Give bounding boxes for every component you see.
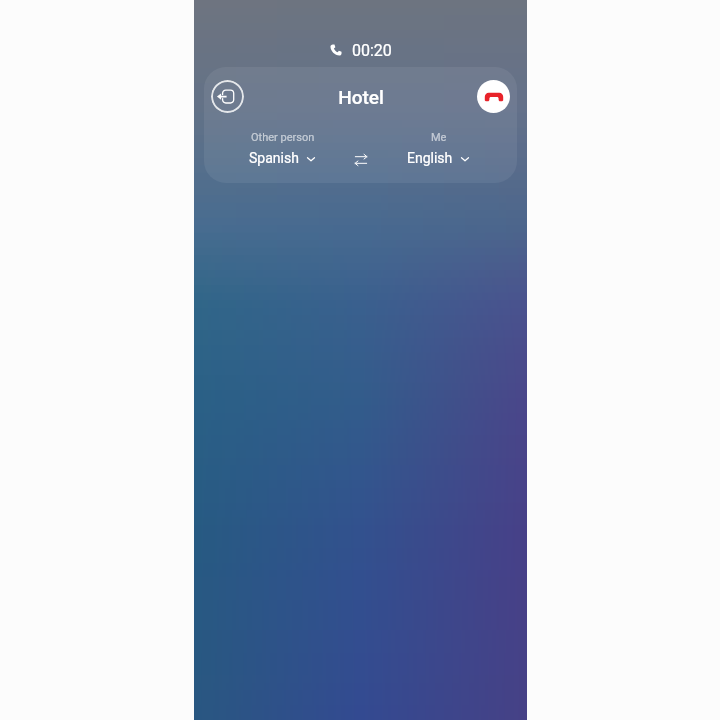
staticText: Other person [251, 131, 315, 144]
staticText: Me [431, 131, 447, 144]
button[interactable]: Exit translation [211, 80, 244, 113]
staticText: Hotel [338, 86, 384, 108]
button[interactable]: Swap languages [343, 142, 379, 178]
staticText: 00:20 [352, 41, 392, 60]
button[interactable]: Other person [223, 126, 343, 183]
staticText: English [407, 150, 453, 166]
staticText: Spanish [249, 150, 299, 166]
button[interactable]: End call [477, 80, 510, 113]
button[interactable]: Me [379, 126, 499, 183]
